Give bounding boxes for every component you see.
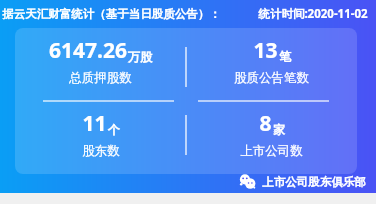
button[interactable]: 11 [15,101,186,174]
button[interactable]: 13 [186,28,357,101]
staticText: 13 [253,36,278,65]
staticText: 总质押股数 [69,70,132,86]
staticText: 上市公司股东俱乐部 [262,175,366,189]
button[interactable]: WeChat [239,173,366,190]
button[interactable]: 8 [186,101,357,174]
staticText: 6147.26 [49,36,127,65]
staticText: 统计时间:2020-11-02 [258,6,368,22]
staticText: 股东数 [82,143,120,159]
button[interactable]: 6147.26 [15,28,186,101]
staticText: 股质公告笔数 [234,70,309,86]
staticText: 家 [273,122,285,137]
other: WeChat [239,173,256,190]
staticText: 笔 [279,49,291,64]
staticText: 万股 [128,49,152,64]
staticText: 个 [108,122,120,137]
staticText: 上市公司数 [240,143,303,159]
staticText: 据云天汇财富统计（基于当日股质公告）： [2,7,221,21]
staticText: 11 [82,109,107,138]
staticText: 8 [259,109,272,138]
